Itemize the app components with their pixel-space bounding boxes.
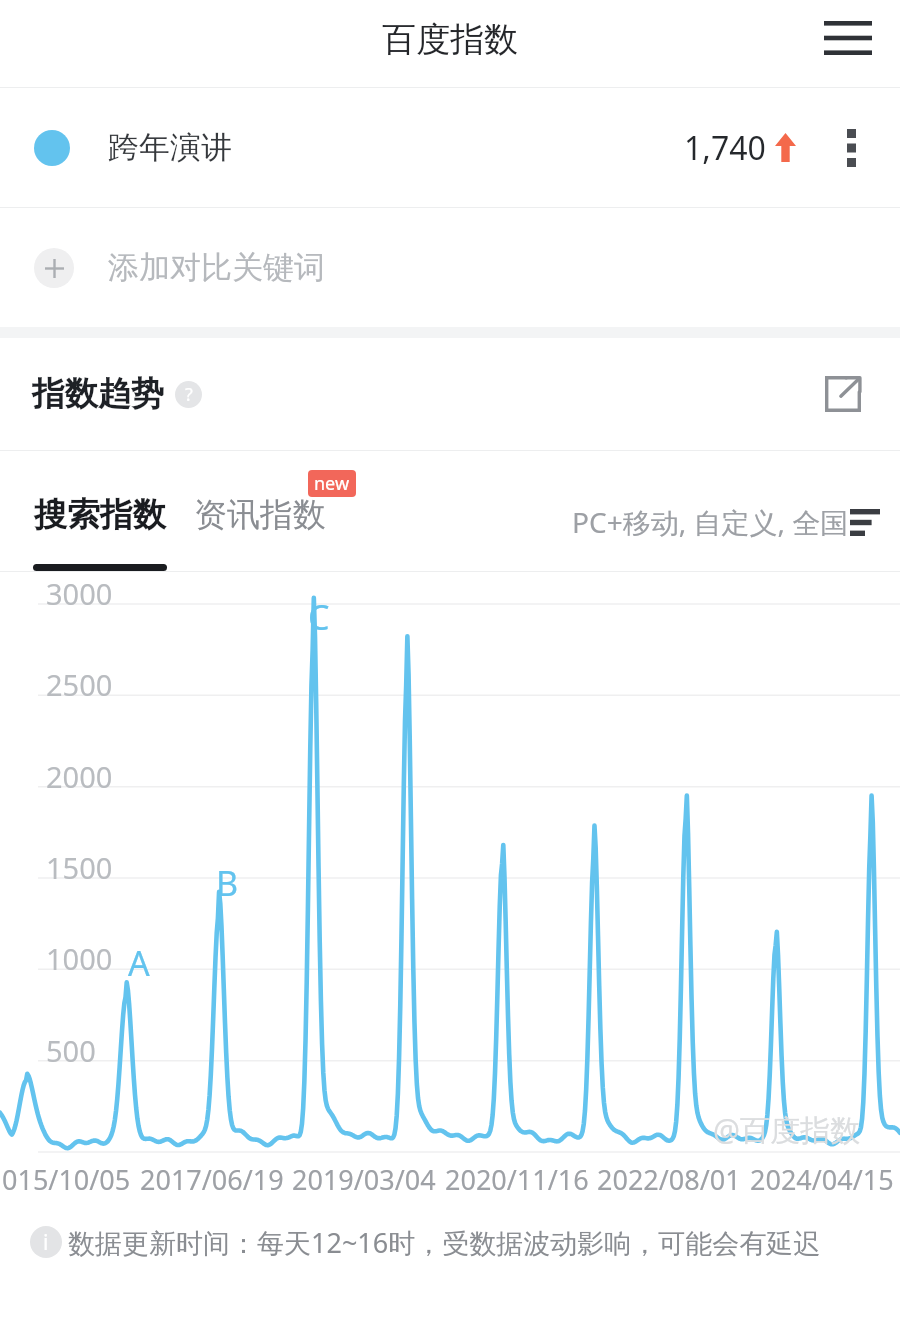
button[interactable]: Help xyxy=(175,381,202,408)
staticText: 2500 xyxy=(46,665,113,704)
staticText: new xyxy=(314,471,350,496)
staticText: @百度指数 xyxy=(713,1109,860,1150)
staticText: 2022/08/01 xyxy=(597,1161,741,1198)
staticText: 指数趋势 xyxy=(32,373,164,415)
staticText: 015/10/05 xyxy=(2,1161,131,1198)
staticText: 百度指数 xyxy=(382,18,518,61)
staticText: i xyxy=(43,1228,49,1257)
staticText: 2017/06/19 xyxy=(140,1161,284,1198)
staticText: 资讯指数 xyxy=(194,494,326,536)
staticText: 添加对比关键词 xyxy=(108,248,325,287)
button[interactable]: 搜索指数 xyxy=(32,494,168,536)
button[interactable]: 跨年演讲 xyxy=(0,88,900,207)
staticText: 500 xyxy=(46,1031,96,1070)
button[interactable]: More options xyxy=(824,121,878,175)
staticText: 3000 xyxy=(46,574,113,613)
staticText: 1500 xyxy=(46,848,113,887)
staticText: 2000 xyxy=(46,757,113,796)
button[interactable]: 添加对比关键词 xyxy=(0,208,900,327)
staticText: C xyxy=(308,594,330,640)
staticText: A xyxy=(128,940,150,986)
staticText: 1,740 xyxy=(684,126,766,170)
staticText: 2020/11/16 xyxy=(445,1161,589,1198)
staticText: PC+移动, 自定义, 全国 xyxy=(572,503,849,541)
staticText: 2024/04/15 xyxy=(750,1161,894,1198)
staticText: 2019/03/04 xyxy=(292,1161,436,1198)
button[interactable]: Open in browser xyxy=(814,365,872,423)
button[interactable]: PC+移动, 自定义, 全国 xyxy=(572,503,880,541)
staticText: 跨年演讲 xyxy=(108,128,232,167)
button[interactable]: Menu xyxy=(816,6,880,70)
button[interactable]: 资讯指数 xyxy=(194,482,326,536)
staticText: 搜索指数 xyxy=(34,494,166,536)
staticText: 1000 xyxy=(46,939,113,978)
staticText: 数据更新时间：每天12~16时，受数据波动影响，可能会有延迟 xyxy=(68,1224,821,1261)
staticText: B xyxy=(216,860,239,906)
staticText: ? xyxy=(185,382,193,407)
